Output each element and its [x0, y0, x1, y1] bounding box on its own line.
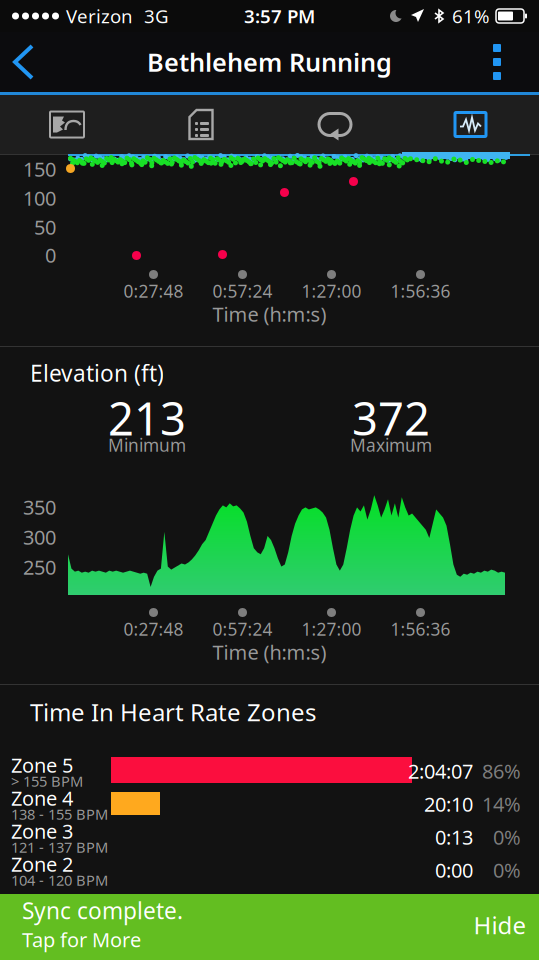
- staticText: 1:27:00: [301, 617, 361, 640]
- button[interactable]: Zone 5: [0, 0, 539, 960]
- staticText: 1:27:00: [301, 279, 361, 302]
- staticText: 350: [23, 494, 56, 520]
- button[interactable]: Laps: [268, 95, 402, 154]
- staticText: 20:10: [424, 791, 473, 817]
- button[interactable]: Summary: [134, 95, 268, 154]
- button[interactable]: Zone 2: [0, 0, 539, 960]
- staticText: Maximum: [350, 433, 432, 456]
- staticText: 1:56:36: [390, 617, 450, 640]
- staticText: Time In Heart Rate Zones: [30, 696, 316, 728]
- staticText: Minimum: [108, 433, 186, 456]
- staticText: 2:04:07: [408, 758, 473, 784]
- staticText: Zone 3: [11, 818, 73, 844]
- staticText: Time (h:m:s): [212, 639, 326, 665]
- staticText: Tap for More: [22, 926, 141, 953]
- staticText: 0:27:48: [123, 617, 183, 640]
- staticText: 3G: [144, 4, 169, 28]
- staticText: 138 - 155 BPM: [11, 804, 108, 824]
- staticText: 0:27:48: [123, 279, 183, 302]
- staticText: 100: [23, 185, 56, 211]
- button[interactable]: Back: [4, 38, 52, 86]
- staticText: 0:57:24: [212, 617, 272, 640]
- staticText: 1:56:36: [390, 279, 450, 302]
- button[interactable]: Sync complete.: [0, 0, 539, 960]
- staticText: 61%: [452, 4, 490, 28]
- staticText: 0%: [493, 857, 521, 883]
- staticText: 0:13: [435, 824, 473, 850]
- staticText: Zone 5: [11, 752, 73, 778]
- button[interactable]: Zone 4: [0, 0, 539, 960]
- button[interactable]: More options: [459, 38, 535, 86]
- staticText: 104 - 120 BPM: [11, 870, 108, 890]
- staticText: 213: [108, 388, 186, 448]
- staticText: 0: [45, 242, 56, 268]
- staticText: 14%: [482, 791, 521, 817]
- staticText: 121 - 137 BPM: [11, 837, 108, 857]
- staticText: 0:00: [435, 857, 473, 883]
- staticText: Zone 2: [11, 851, 73, 877]
- staticText: 50: [34, 214, 56, 240]
- staticText: 0%: [493, 824, 521, 850]
- staticText: 300: [23, 524, 56, 550]
- staticText: 372: [352, 388, 430, 448]
- button[interactable]: Map: [0, 95, 134, 154]
- staticText: 3:57 PM: [244, 4, 315, 28]
- staticText: 0:57:24: [212, 279, 272, 302]
- staticText: 250: [23, 554, 56, 580]
- staticText: Verizon: [66, 4, 133, 28]
- staticText: Bethlehem Running: [147, 45, 392, 79]
- staticText: 150: [23, 156, 56, 182]
- staticText: 86%: [482, 758, 521, 784]
- staticText: Time (h:m:s): [212, 301, 326, 327]
- button[interactable]: Zone 3: [0, 0, 539, 960]
- staticText: Hide: [473, 909, 526, 941]
- staticText: Zone 4: [11, 785, 73, 811]
- staticText: Sync complete.: [22, 895, 183, 925]
- button[interactable]: Charts: [402, 95, 539, 154]
- staticText: Elevation (ft): [30, 358, 164, 388]
- staticText: > 155 BPM: [11, 771, 83, 791]
